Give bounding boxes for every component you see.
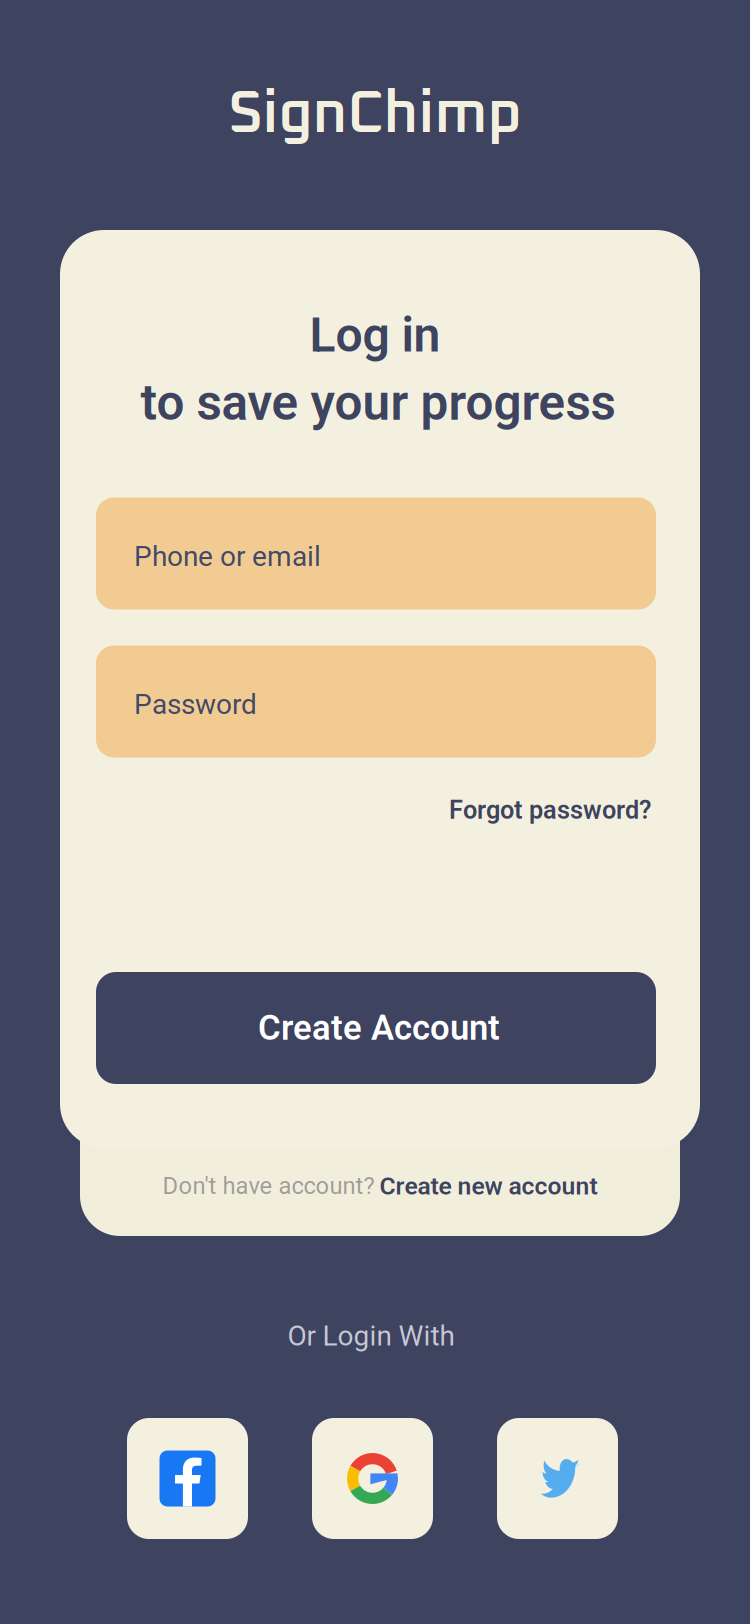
staticText: Log in <box>309 307 440 363</box>
staticText: Don't have account? <box>162 1172 379 1200</box>
button[interactable]: Phone or email <box>96 497 656 609</box>
button[interactable]: Sign in with Google <box>312 1418 433 1539</box>
staticText: to save your progress <box>140 374 615 432</box>
staticText: Password <box>134 688 257 721</box>
button[interactable]: Don't have account? <box>80 1166 680 1206</box>
button[interactable]: Sign in with Facebook <box>127 1418 248 1539</box>
staticText: Or Login With <box>287 1320 454 1352</box>
staticText: Create Account <box>258 1008 500 1048</box>
staticText: Create new account <box>379 1171 597 1200</box>
staticText: Forgot password? <box>449 795 651 825</box>
button[interactable]: Forgot password? <box>449 795 651 825</box>
button[interactable]: Sign in with Twitter <box>497 1418 618 1539</box>
staticText: SignChimp <box>228 86 521 144</box>
staticText: Phone or email <box>134 540 321 573</box>
button[interactable]: Password <box>96 645 656 757</box>
button[interactable]: Create Account <box>96 972 656 1084</box>
